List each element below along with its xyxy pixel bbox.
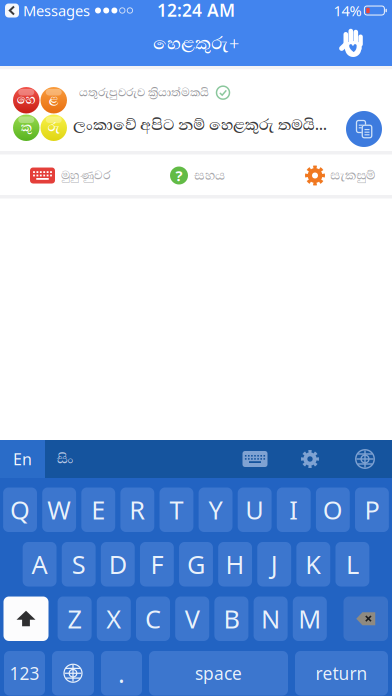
- button[interactable]: Switch language: [345, 440, 385, 478]
- staticText: Messages: [23, 1, 90, 20]
- button[interactable]: T: [159, 487, 193, 532]
- staticText: X: [106, 602, 121, 635]
- staticText: Z: [68, 602, 82, 635]
- button[interactable]: Keyboard layout: [235, 440, 275, 478]
- staticText: 14%: [333, 1, 361, 20]
- staticText: return: [315, 662, 367, 685]
- staticText: .: [118, 656, 125, 690]
- button[interactable]: S: [62, 542, 96, 586]
- button[interactable]: O: [316, 487, 350, 532]
- button[interactable]: Say Hi: [333, 23, 373, 63]
- staticText: En: [13, 448, 32, 470]
- button[interactable]: L: [335, 542, 369, 586]
- button[interactable]: return: [295, 651, 388, 695]
- button[interactable]: Themes: [30, 156, 111, 195]
- staticText: M: [298, 602, 321, 635]
- staticText: Q: [10, 493, 30, 526]
- button[interactable]: M: [293, 596, 327, 641]
- button[interactable]: P: [355, 487, 389, 532]
- staticText: 12:24 AM: [157, 0, 235, 21]
- button[interactable]: K: [296, 542, 330, 586]
- button[interactable]: D: [101, 542, 135, 586]
- button[interactable]: E: [81, 487, 115, 532]
- staticText: O: [323, 493, 343, 526]
- button[interactable]: V: [175, 596, 209, 641]
- staticText: D: [109, 547, 127, 581]
- button[interactable]: Delete: [343, 596, 388, 641]
- staticText: සැකසුම්: [330, 166, 376, 185]
- staticText: ?: [175, 166, 182, 185]
- button[interactable]: Shift: [3, 596, 48, 641]
- staticText: මුහුණුවර: [61, 166, 111, 185]
- button[interactable]: G: [179, 542, 213, 586]
- staticText: හෙළකුරු+: [153, 30, 239, 57]
- staticText: R: [129, 493, 145, 526]
- button[interactable]: space: [149, 651, 288, 695]
- staticText: රු: [48, 118, 60, 137]
- staticText: I: [289, 493, 298, 526]
- staticText: F: [150, 547, 163, 581]
- staticText: Y: [208, 493, 222, 526]
- button[interactable]: I: [277, 487, 311, 532]
- staticText: G: [187, 547, 205, 581]
- button[interactable]: Sinhala keyboard: [45, 440, 85, 478]
- staticText: 123: [9, 662, 39, 685]
- button[interactable]: N: [254, 596, 288, 641]
- staticText: සිං: [56, 449, 73, 469]
- staticText: A: [32, 547, 48, 581]
- button[interactable]: .: [101, 651, 142, 695]
- button[interactable]: R: [120, 487, 154, 532]
- button[interactable]: 123: [4, 651, 45, 695]
- staticText: N: [261, 602, 280, 635]
- button[interactable]: B: [214, 596, 248, 641]
- staticText: S: [72, 547, 86, 581]
- button[interactable]: Settings: [305, 156, 376, 195]
- button[interactable]: W: [42, 487, 76, 532]
- button[interactable]: X: [97, 596, 131, 641]
- staticText: E: [91, 493, 105, 526]
- button[interactable]: J: [257, 542, 291, 586]
- staticText: යතුරුපුවරුව ක්‍රියාත්මකයි: [79, 84, 209, 101]
- staticText: V: [185, 602, 200, 635]
- button[interactable]: U: [238, 487, 272, 532]
- button[interactable]: F: [140, 542, 174, 586]
- staticText: J: [271, 547, 278, 581]
- button[interactable]: English keyboard: [0, 440, 45, 478]
- button[interactable]: A: [23, 542, 57, 586]
- button[interactable]: Q: [3, 487, 37, 532]
- staticText: T: [169, 493, 183, 526]
- button[interactable]: Back to Messages: [5, 1, 90, 20]
- staticText: කු: [21, 118, 32, 137]
- staticText: B: [223, 602, 239, 635]
- staticText: W: [47, 493, 71, 526]
- staticText: H: [226, 547, 245, 581]
- button[interactable]: Y: [199, 487, 232, 532]
- button[interactable]: Copy: [346, 111, 382, 147]
- staticText: ළ: [49, 90, 59, 109]
- staticText: P: [364, 493, 379, 526]
- button[interactable]: Z: [58, 596, 92, 641]
- staticText: space: [195, 662, 242, 685]
- staticText: U: [245, 493, 264, 526]
- staticText: L: [346, 547, 359, 581]
- button[interactable]: C: [136, 596, 170, 641]
- button[interactable]: Help: [170, 156, 225, 195]
- button[interactable]: H: [218, 542, 252, 586]
- staticText: K: [305, 547, 321, 581]
- button[interactable]: Next keyboard: [52, 651, 94, 695]
- staticText: හෙ: [17, 90, 36, 109]
- staticText: C: [145, 602, 161, 635]
- staticText: සහය: [194, 166, 225, 185]
- button[interactable]: Keyboard settings: [290, 440, 330, 478]
- staticText: ලංකාවේ අපිට නම් හෙළකුරු තමයි...: [73, 113, 327, 137]
